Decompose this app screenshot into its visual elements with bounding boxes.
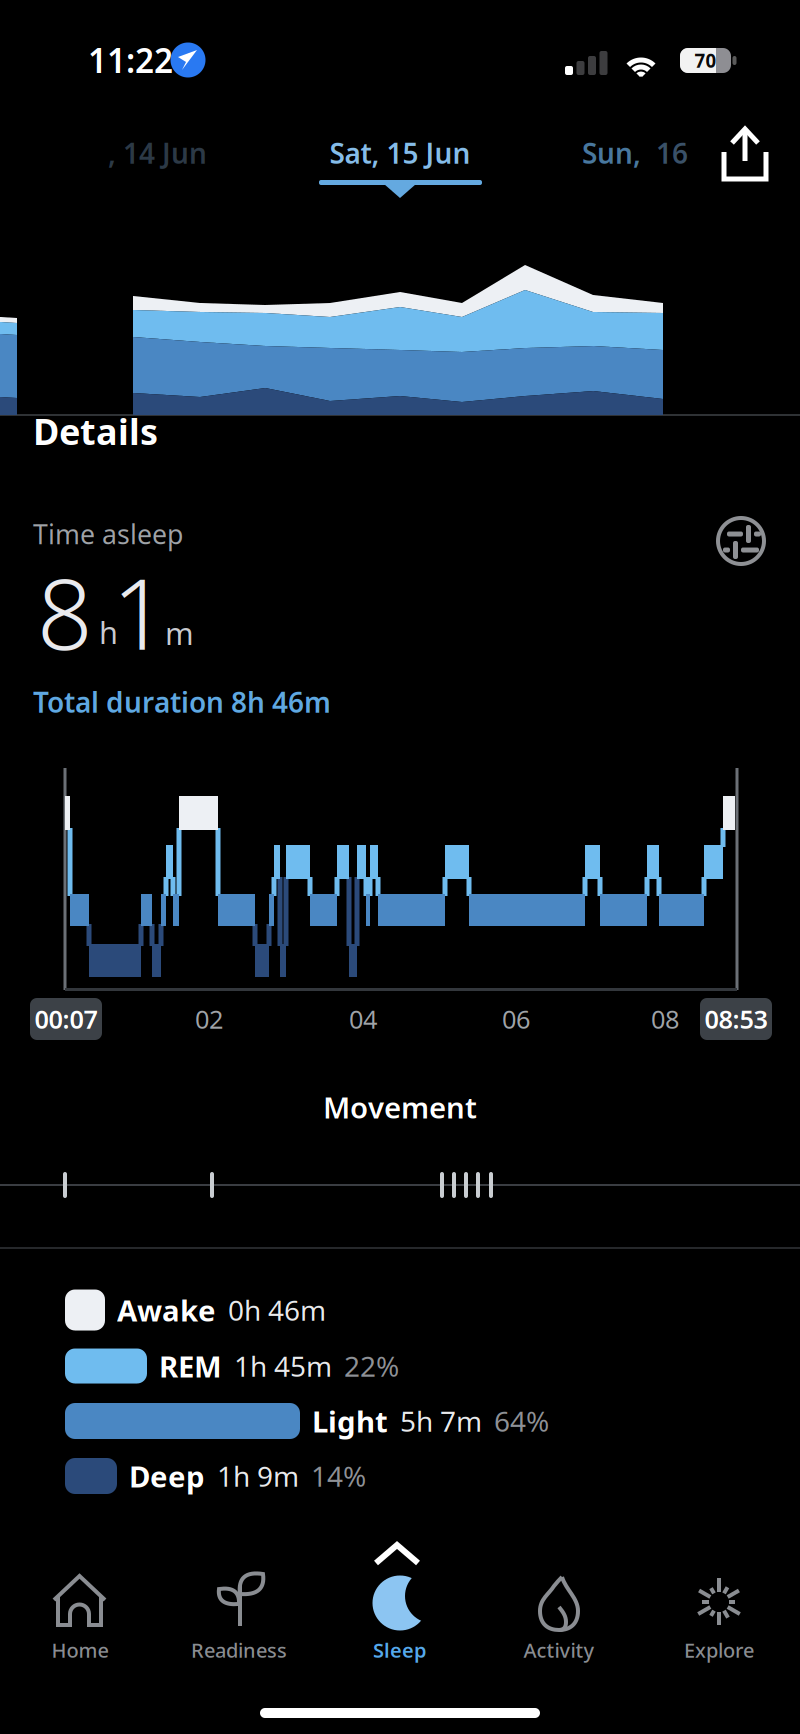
button[interactable] xyxy=(713,513,769,569)
staticText: 02 xyxy=(195,1002,223,1036)
staticText: REM xyxy=(159,1346,222,1385)
staticText: h xyxy=(99,612,118,652)
button[interactable]: Home xyxy=(5,1557,155,1669)
staticText: , 14 Jun xyxy=(108,134,207,172)
button[interactable]: Sleep xyxy=(324,1539,476,1669)
staticText: 04 xyxy=(349,1002,377,1036)
staticText: Readiness xyxy=(191,1637,287,1663)
staticText: 22% xyxy=(344,1347,399,1385)
staticText: 14% xyxy=(311,1457,366,1495)
staticText: 70 xyxy=(694,48,716,73)
button[interactable] xyxy=(715,123,775,185)
button[interactable]: Sun, xyxy=(575,127,705,179)
button[interactable]: , 14 Jun xyxy=(98,127,218,179)
staticText: Time asleep xyxy=(33,516,183,552)
button[interactable]: Explore xyxy=(644,1557,794,1669)
button[interactable]: Sat, 15 Jun xyxy=(310,128,490,200)
staticText: Sleep xyxy=(373,1637,427,1663)
staticText: Sat, 15 Jun xyxy=(329,134,470,172)
staticText: 1 xyxy=(112,547,168,677)
staticText: Activity xyxy=(523,1637,594,1663)
staticText: 06 xyxy=(502,1002,530,1036)
staticText: 08:53 xyxy=(704,1002,767,1036)
staticText: Home xyxy=(51,1637,108,1663)
staticText: 11:22 xyxy=(88,38,173,82)
staticText: 0h 46m xyxy=(228,1291,326,1329)
staticText: 1h 9m xyxy=(217,1457,299,1495)
staticText: Details xyxy=(33,407,158,455)
staticText: 08 xyxy=(651,1002,679,1036)
staticText: Sun, xyxy=(582,134,641,172)
button[interactable]: Readiness xyxy=(163,1557,315,1669)
staticText: 16 xyxy=(656,134,688,172)
staticText: Total duration 8h 46m xyxy=(33,683,331,721)
staticText: 8 xyxy=(37,547,93,677)
staticText: Explore xyxy=(684,1637,754,1663)
staticText: 5h 7m xyxy=(400,1402,482,1440)
staticText: Deep xyxy=(129,1456,205,1495)
staticText: 1h 45m xyxy=(234,1347,332,1385)
staticText: 64% xyxy=(494,1402,549,1440)
staticText: m xyxy=(165,613,194,653)
staticText: Awake xyxy=(117,1290,216,1329)
button[interactable]: Activity xyxy=(483,1557,635,1669)
staticText: 00:07 xyxy=(34,1002,97,1036)
staticText: Light xyxy=(312,1401,388,1440)
staticText: Movement xyxy=(323,1087,477,1126)
